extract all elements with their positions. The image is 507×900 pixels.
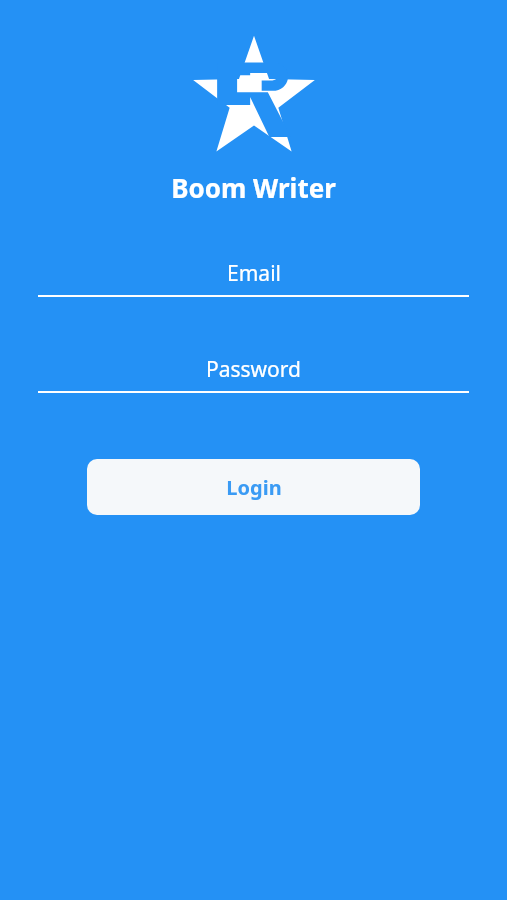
other: Boom Writer logo [190, 38, 318, 158]
staticText: Password [206, 355, 301, 384]
button[interactable]: Login [87, 459, 420, 515]
staticText: Boom Writer [171, 170, 336, 205]
staticText: Login [226, 474, 282, 501]
staticText: Email [227, 259, 281, 288]
button[interactable]: Password [38, 347, 469, 393]
button[interactable]: Email [38, 251, 469, 297]
